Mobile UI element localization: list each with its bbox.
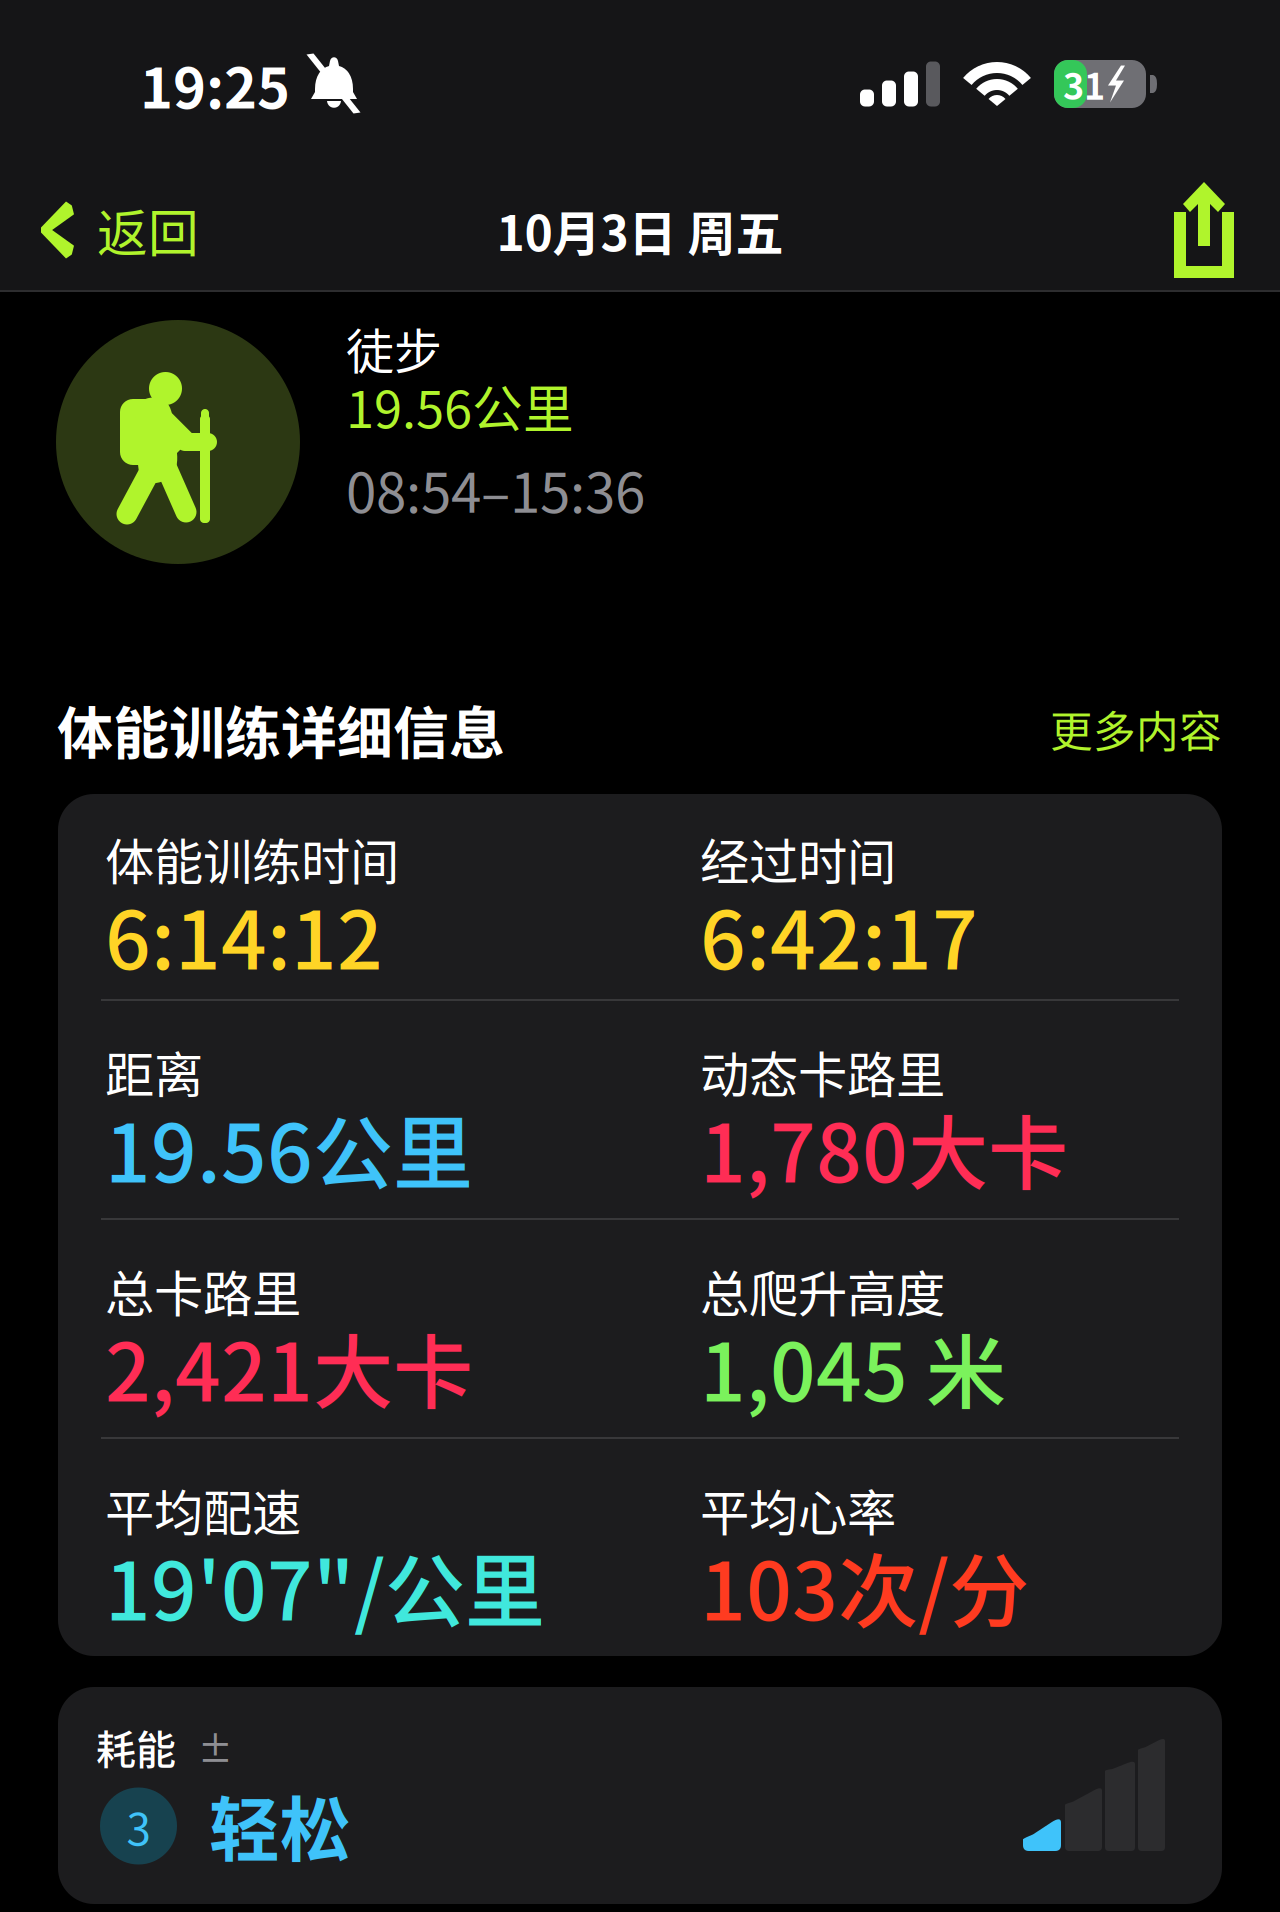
staticText: 经过时间 xyxy=(700,823,896,894)
staticText: 3 xyxy=(126,1794,150,1858)
staticText: 平均心率 xyxy=(700,1474,896,1545)
staticText: 19:25 xyxy=(140,43,290,125)
staticText: 19'07"/公里 xyxy=(105,1528,545,1643)
staticText: 耗能 xyxy=(96,1718,176,1776)
staticText: 轻松 xyxy=(209,1774,351,1876)
staticText: 体能训练详细信息 xyxy=(57,688,505,770)
staticText: 2,421大卡 xyxy=(105,1309,473,1424)
staticText: 总爬升高度 xyxy=(700,1255,945,1326)
staticText: 1,780大卡 xyxy=(700,1090,1068,1205)
staticText: 更多内容 xyxy=(1050,698,1222,760)
staticText: 10月3日 周五 xyxy=(496,195,783,265)
staticText: 1,045 米 xyxy=(700,1309,1006,1424)
button[interactable]: Share xyxy=(1150,172,1280,288)
staticText: 19.56公里 xyxy=(346,369,574,443)
staticText: 徒步 xyxy=(346,313,442,383)
staticText: 体能训练时间 xyxy=(105,823,399,894)
staticText: 6:42:17 xyxy=(700,877,978,992)
staticText: 6:14:12 xyxy=(105,877,383,992)
staticText: 返回 xyxy=(97,193,199,267)
staticText: 31 xyxy=(1063,58,1105,110)
staticText: 距离 xyxy=(105,1036,203,1107)
staticText: ± xyxy=(198,1722,233,1772)
button[interactable]: 返回 xyxy=(0,172,223,288)
staticText: 19.56公里 xyxy=(105,1090,473,1205)
staticText: 平均配速 xyxy=(105,1474,301,1545)
staticText: 103次/分 xyxy=(700,1528,1029,1643)
staticText: 总卡路里 xyxy=(105,1255,301,1326)
button[interactable]: 更多内容 xyxy=(1050,698,1222,760)
staticText: 动态卡路里 xyxy=(700,1036,945,1107)
staticText: 08:54–15:36 xyxy=(346,449,645,529)
